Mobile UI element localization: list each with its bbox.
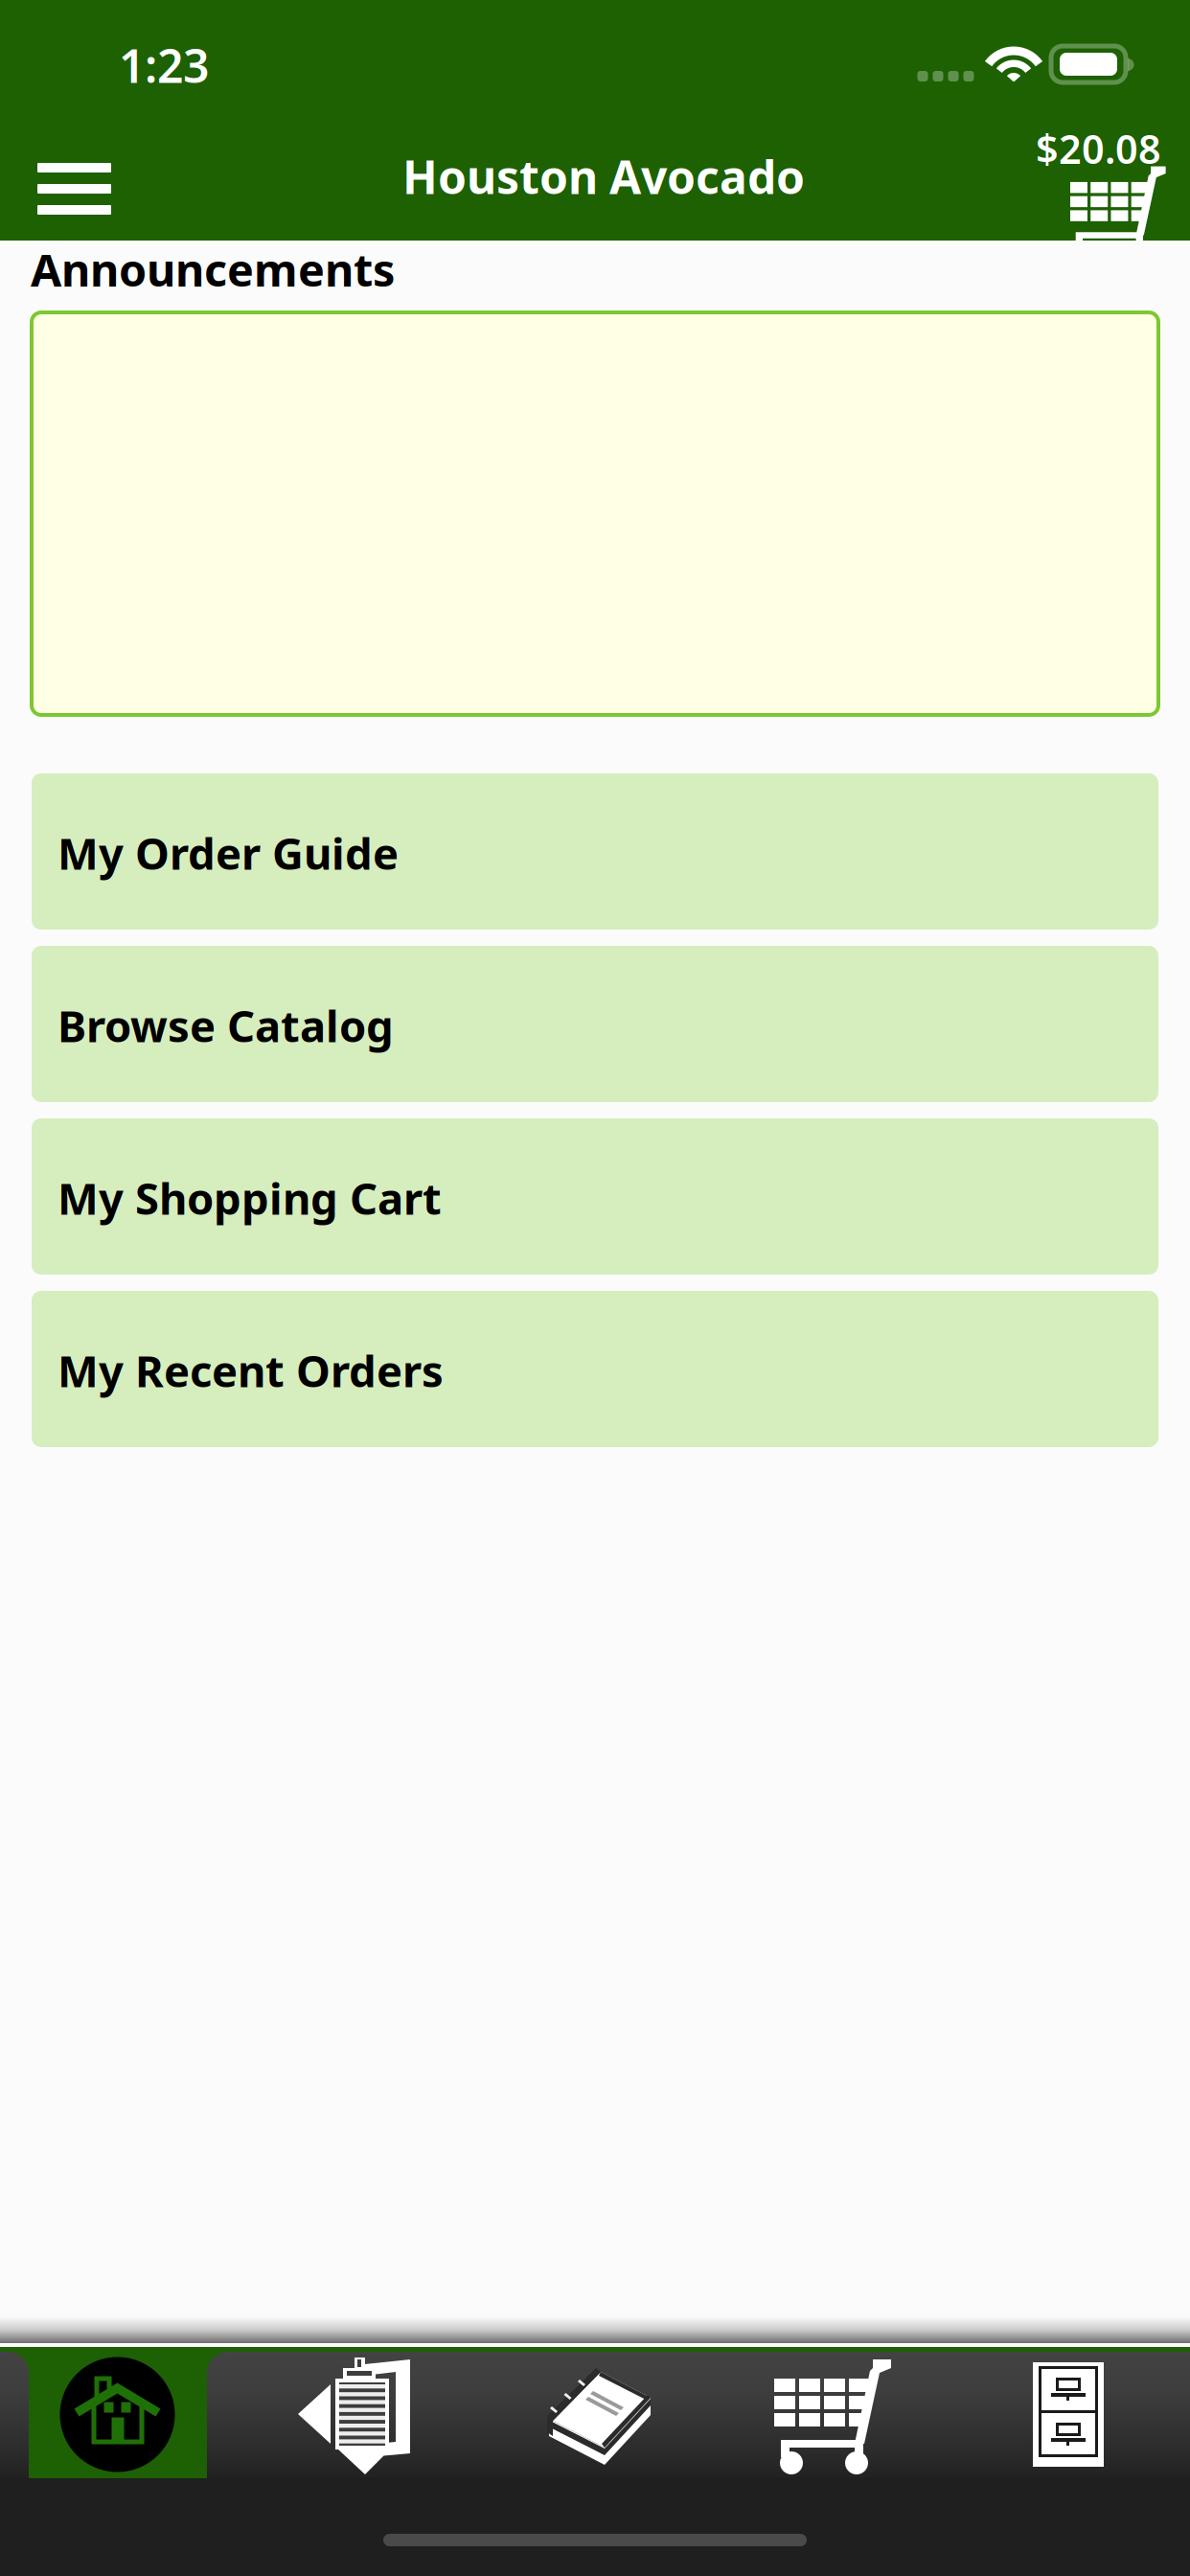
staticText: My Order Guide	[57, 824, 399, 882]
button[interactable]: Menu	[0, 115, 149, 241]
staticText: Houston Avocado	[402, 146, 805, 207]
button[interactable]: Browse Catalog	[475, 2352, 713, 2478]
button[interactable]: Browse Catalog	[32, 946, 1158, 1102]
button[interactable]: Shopping Cart	[713, 2352, 950, 2478]
staticText: $20.08	[1036, 122, 1161, 175]
button[interactable]: My Recent Orders	[32, 1291, 1158, 1447]
button[interactable]: Recent Orders	[950, 2352, 1190, 2478]
staticText: My Shopping Cart	[57, 1169, 442, 1227]
button[interactable]: My Order Guide	[32, 773, 1158, 930]
staticText: My Recent Orders	[57, 1342, 444, 1399]
button[interactable]: Order Guide	[238, 2352, 475, 2478]
button[interactable]: Home	[0, 2352, 238, 2478]
staticText: Browse Catalog	[57, 997, 394, 1054]
button[interactable]: Cart total $20.08	[958, 105, 1190, 241]
button[interactable]: My Shopping Cart	[32, 1118, 1158, 1275]
staticText: 1:23	[119, 35, 209, 96]
staticText: Announcements	[31, 240, 395, 299]
